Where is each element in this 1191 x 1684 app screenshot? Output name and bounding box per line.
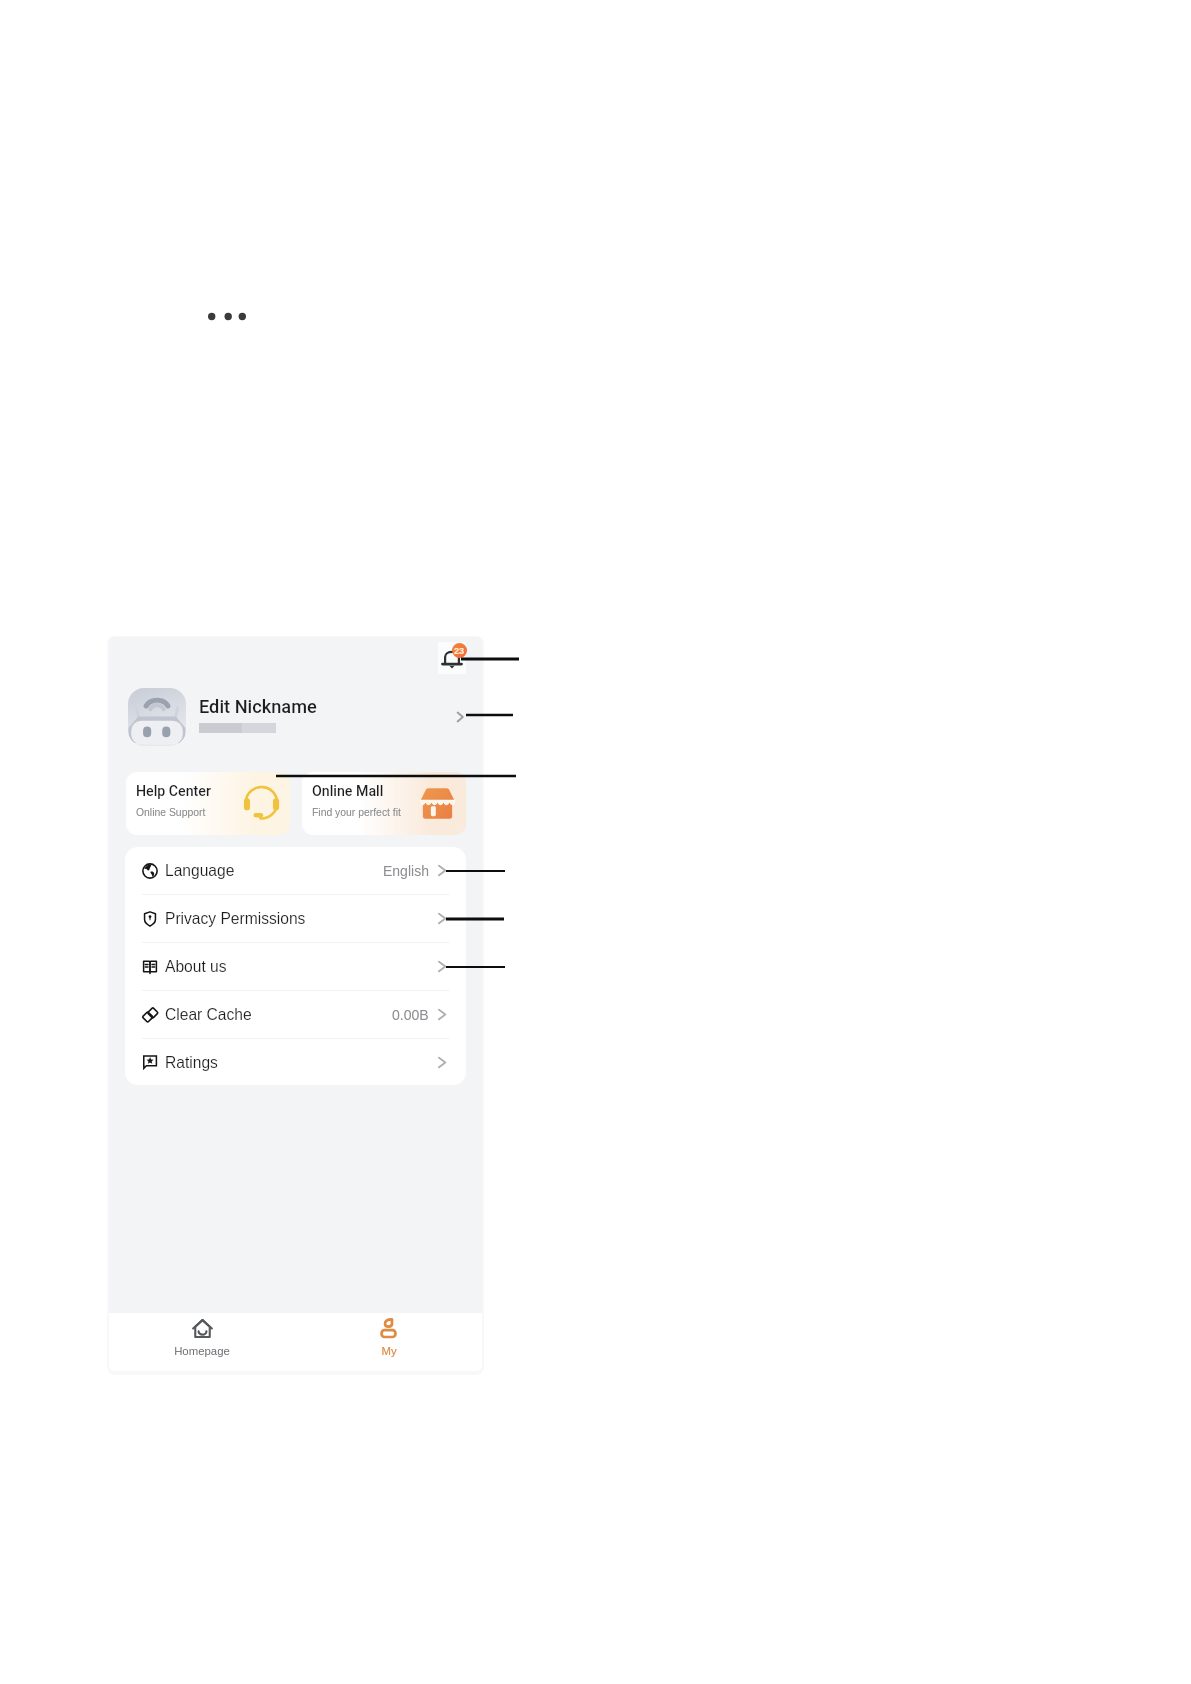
button[interactable]: Edit Nickname [109,678,482,756]
button[interactable]: Online Mall [302,772,466,835]
staticText: Find your perfect fit [312,807,401,819]
button[interactable]: Privacy Permissions [125,895,466,943]
staticText: About us [165,958,227,975]
button[interactable]: Clear Cache [125,991,466,1039]
button[interactable]: Ratings [125,1039,466,1085]
staticText: Edit Nickname [199,696,317,717]
staticText: Homepage [174,1345,230,1358]
staticText: Help Center [136,783,211,800]
staticText: Language [165,862,235,879]
staticText: 23 [454,646,465,656]
staticText: My [381,1345,397,1358]
staticText: Clear Cache [165,1006,252,1023]
staticText: Online Support [136,807,206,819]
staticText: Ratings [165,1054,218,1071]
button[interactable]: My [295,1309,482,1367]
staticText: 0.00B [392,1007,429,1023]
staticText: English [383,863,429,879]
staticText: Online Mall [312,783,384,800]
button[interactable]: Language [125,847,466,895]
button[interactable]: Help Center [126,772,290,835]
button[interactable]: About us [125,943,466,991]
staticText: Privacy Permissions [165,910,306,927]
button[interactable]: Homepage [109,1309,295,1367]
button[interactable]: Notifications [436,640,468,676]
